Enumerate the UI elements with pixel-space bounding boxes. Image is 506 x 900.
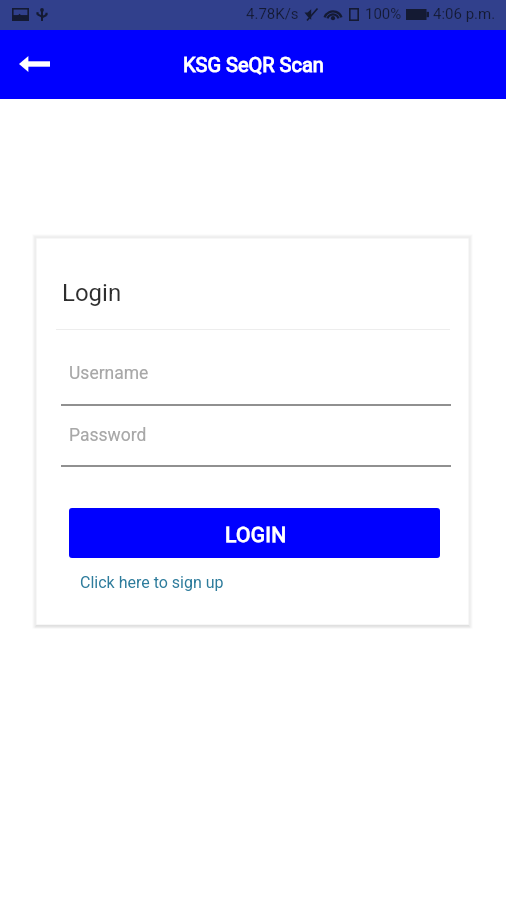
staticText: LOGIN — [225, 523, 287, 548]
staticText: Login — [62, 279, 122, 307]
staticText: 4.78K/s — [246, 5, 299, 23]
staticText: Username — [69, 363, 149, 384]
staticText: KSG SeQR Scan — [183, 53, 324, 76]
staticText: Click here to sign up — [80, 573, 224, 592]
staticText: 100% — [365, 5, 402, 23]
staticText: Password — [69, 425, 147, 446]
button[interactable]: LOGIN — [69, 508, 440, 558]
button[interactable]: Back — [3, 40, 51, 88]
button[interactable]: Click here to sign up — [74, 568, 230, 597]
staticText: 4:06 p.m. — [433, 5, 496, 23]
